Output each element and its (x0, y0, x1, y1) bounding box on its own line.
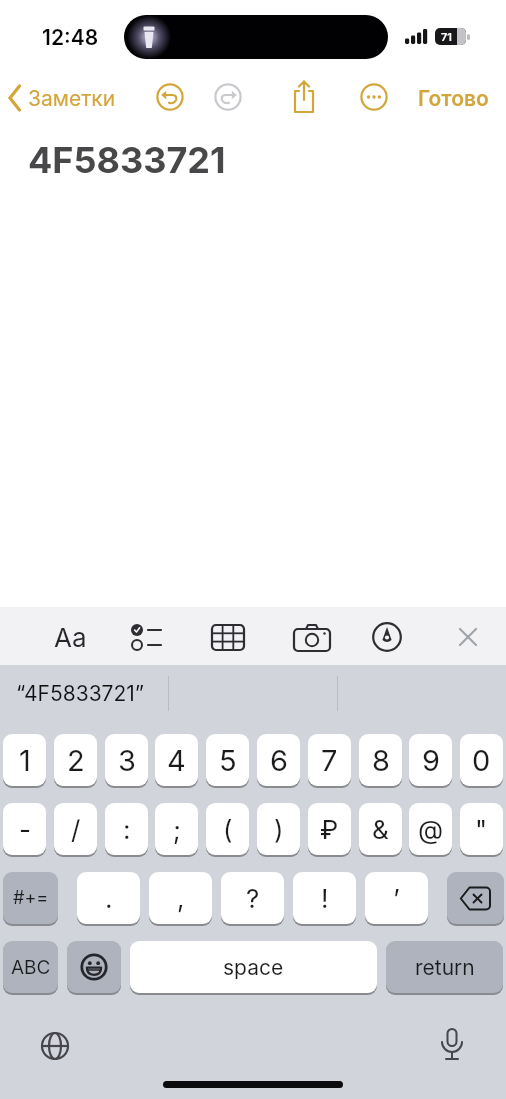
button[interactable]: 5 (206, 734, 249, 786)
button[interactable] (67, 941, 121, 993)
button[interactable]: : (105, 803, 148, 855)
button[interactable] (360, 83, 388, 111)
button[interactable]: 2 (54, 734, 97, 786)
button[interactable]: . (77, 872, 140, 924)
button[interactable]: 9 (409, 734, 452, 786)
staticText: 9 (422, 743, 440, 778)
button[interactable]: Заметки (4, 80, 134, 116)
button[interactable]: 7 (308, 734, 351, 786)
button[interactable]: ’ (365, 872, 428, 924)
staticText: 5 (219, 743, 237, 778)
staticText: space (223, 955, 284, 980)
staticText: 4 (167, 743, 186, 778)
staticText: 12:48 (42, 25, 99, 50)
staticText: ! (321, 883, 329, 914)
staticText: @ (418, 814, 444, 845)
staticText: ? (246, 883, 260, 914)
button[interactable]: ( (206, 803, 249, 855)
button[interactable]: " (460, 803, 503, 855)
staticText: Готово (418, 86, 489, 111)
button[interactable]: ! (293, 872, 356, 924)
button[interactable]: ABC (3, 941, 58, 993)
button[interactable]: “4F5833721” (0, 665, 169, 722)
staticText: ABC (11, 956, 51, 979)
staticText: & (372, 814, 389, 845)
button[interactable]: return (386, 941, 503, 993)
button[interactable]: Готово (408, 80, 498, 116)
staticText: 1 (19, 743, 31, 778)
staticText: 8 (372, 743, 390, 778)
button[interactable]: ; (155, 803, 198, 855)
button[interactable] (439, 1028, 465, 1064)
button[interactable]: 3 (105, 734, 148, 786)
button[interactable] (214, 83, 242, 111)
staticText: #+= (13, 887, 49, 909)
staticText: 3 (118, 743, 136, 778)
staticText: “4F5833721” (16, 681, 145, 706)
button[interactable] (447, 872, 504, 924)
staticText: " (475, 814, 488, 845)
button[interactable]: ) (257, 803, 300, 855)
staticText: / (71, 814, 81, 845)
staticText: ; (173, 814, 181, 845)
staticText: Aa (54, 622, 87, 653)
button[interactable]: & (359, 803, 402, 855)
staticText: ’ (393, 883, 400, 914)
staticText: : (123, 814, 131, 845)
button[interactable] (289, 79, 319, 114)
staticText: 7 (321, 743, 338, 778)
staticText: . (105, 883, 113, 914)
button[interactable] (130, 621, 163, 653)
button[interactable]: Aa (46, 618, 94, 656)
button[interactable] (293, 623, 331, 652)
staticText: return (415, 955, 475, 980)
button[interactable]: , (149, 872, 212, 924)
button[interactable]: ? (221, 872, 284, 924)
button[interactable]: 6 (257, 734, 300, 786)
button[interactable] (371, 621, 403, 653)
staticText: 0 (472, 743, 491, 778)
staticText: , (177, 883, 185, 914)
button[interactable]: 4 (155, 734, 198, 786)
button[interactable] (41, 1032, 69, 1060)
staticText: 2 (67, 743, 85, 778)
staticText: - (19, 814, 31, 845)
button[interactable]: 0 (460, 734, 503, 786)
button[interactable] (457, 626, 479, 648)
staticText: 6 (270, 743, 288, 778)
button[interactable] (156, 83, 184, 111)
button[interactable]: 1 (3, 734, 46, 786)
staticText: Заметки (28, 86, 116, 111)
button[interactable]: / (54, 803, 97, 855)
staticText: 4F5833721 (28, 138, 226, 176)
button[interactable]: #+= (3, 872, 58, 924)
button[interactable]: 8 (359, 734, 402, 786)
staticText: ) (274, 814, 284, 845)
staticText: ₽ (320, 814, 339, 845)
staticText: ( (223, 814, 233, 845)
button[interactable]: - (3, 803, 46, 855)
button[interactable]: space (130, 941, 377, 993)
button[interactable]: ₽ (308, 803, 351, 855)
button[interactable] (211, 624, 245, 651)
staticText: 71 (441, 30, 452, 43)
button[interactable]: @ (409, 803, 452, 855)
